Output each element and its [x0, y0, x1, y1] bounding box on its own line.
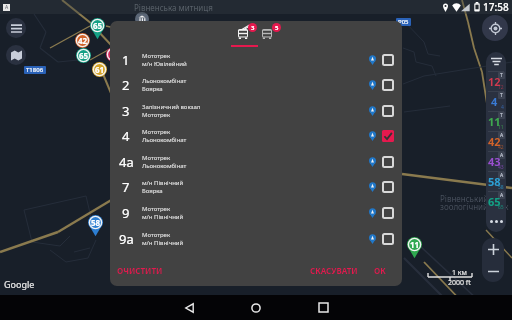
button[interactable]: Т: [486, 91, 506, 111]
staticText: А: [500, 152, 504, 159]
button[interactable]: Home: [233, 295, 279, 320]
staticText: 58: [488, 174, 501, 189]
staticText: 58: [91, 217, 101, 228]
button[interactable]: 9: [110, 200, 402, 225]
staticText: 11: [410, 239, 420, 250]
staticText: 11: [498, 124, 504, 131]
staticText: 65: [79, 50, 89, 61]
staticText: Боярка: [142, 187, 163, 195]
staticText: 11: [488, 114, 501, 129]
button[interactable]: А: [486, 171, 506, 191]
staticText: 58: [498, 184, 504, 191]
staticText: Мототрек: [142, 52, 171, 60]
staticText: 4а: [119, 153, 134, 171]
button[interactable]: Bus routes: [251, 21, 285, 48]
staticText: 17:58: [483, 0, 509, 14]
staticText: 42: [488, 134, 501, 149]
button[interactable]: Trolleybus routes: [227, 21, 261, 48]
staticText: 65: [498, 204, 504, 211]
button[interactable]: 1: [110, 47, 402, 72]
button[interactable]: Map layers: [6, 45, 26, 65]
staticText: Льонокомбінат: [142, 162, 187, 170]
button[interactable]: 2: [110, 72, 402, 97]
staticText: 2000 ft: [448, 278, 471, 288]
button[interactable]: Zoom out: [482, 260, 504, 282]
staticText: Мототрек: [142, 231, 171, 239]
staticText: 42: [498, 144, 504, 151]
button[interactable]: My location: [482, 15, 508, 41]
button[interactable]: More routes: [486, 211, 506, 232]
staticText: Google: [4, 278, 35, 290]
staticText: Льонокомбінат: [142, 136, 187, 144]
staticText: Мототрек: [142, 154, 171, 162]
button[interactable]: А: [486, 131, 506, 151]
staticText: 42: [78, 35, 88, 46]
button[interactable]: 7: [110, 174, 402, 199]
staticText: м/н Північний: [142, 213, 184, 221]
staticText: ОЧИСТИТИ: [117, 265, 163, 276]
button[interactable]: Т: [486, 111, 506, 131]
staticText: м/н Північний: [142, 179, 184, 187]
staticText: 1: [122, 51, 130, 69]
staticText: 9: [122, 204, 130, 222]
staticText: 3: [251, 24, 255, 32]
staticText: 65: [93, 20, 103, 31]
staticText: Рівненський зоологічний парк: [440, 193, 509, 212]
staticText: 1 км: [452, 268, 467, 278]
staticText: А: [500, 132, 504, 139]
staticText: Мототрек: [142, 111, 171, 119]
staticText: 4: [122, 127, 130, 145]
staticText: м/н Ювілейний: [142, 60, 187, 68]
button[interactable]: Back: [166, 295, 212, 320]
button[interactable]: 3: [110, 98, 402, 123]
button[interactable]: 4: [110, 123, 402, 148]
button[interactable]: Filter: [486, 52, 506, 71]
staticText: Боярка: [142, 85, 163, 93]
staticText: СКАСУВАТИ: [310, 265, 358, 276]
button[interactable]: А: [486, 151, 506, 171]
staticText: A: [5, 4, 9, 11]
staticText: Т: [500, 72, 503, 79]
staticText: 7: [122, 178, 130, 196]
button[interactable]: А: [486, 191, 506, 211]
button[interactable]: 4а: [110, 149, 402, 174]
staticText: Т: [500, 92, 503, 99]
staticText: ОК: [374, 265, 386, 276]
staticText: Мототрек: [142, 128, 171, 136]
staticText: А: [500, 172, 504, 179]
staticText: Залізничний вокзал: [142, 103, 201, 111]
staticText: 61: [95, 64, 105, 75]
button[interactable]: Т: [486, 71, 506, 91]
staticText: 9а: [119, 230, 134, 248]
button[interactable]: СКАСУВАТИ: [304, 260, 364, 281]
staticText: 12: [488, 74, 501, 89]
staticText: 43: [488, 154, 501, 169]
button[interactable]: ОК: [368, 260, 397, 281]
staticText: Рівненська митниця: [134, 2, 213, 13]
staticText: Р05: [398, 18, 409, 26]
staticText: 4: [491, 94, 498, 109]
button[interactable]: ОЧИСТИТИ: [110, 260, 169, 281]
staticText: 3: [122, 102, 130, 120]
staticText: 12: [498, 84, 504, 91]
staticText: 2: [122, 76, 130, 94]
staticText: 4: [501, 104, 504, 111]
staticText: 65: [488, 194, 501, 209]
button[interactable]: Menu: [6, 18, 26, 38]
staticText: 5: [275, 24, 279, 32]
staticText: А: [500, 192, 504, 199]
staticText: Льонокомбінат: [142, 77, 187, 85]
button[interactable]: Zoom in: [482, 238, 504, 260]
button[interactable]: 9а: [110, 226, 402, 251]
staticText: Т1806: [26, 66, 44, 74]
staticText: 43: [498, 164, 504, 171]
staticText: Т: [500, 112, 503, 119]
staticText: м/н Північний: [142, 239, 184, 247]
staticText: Мототрек: [142, 205, 171, 213]
button[interactable]: Recents: [300, 295, 346, 320]
